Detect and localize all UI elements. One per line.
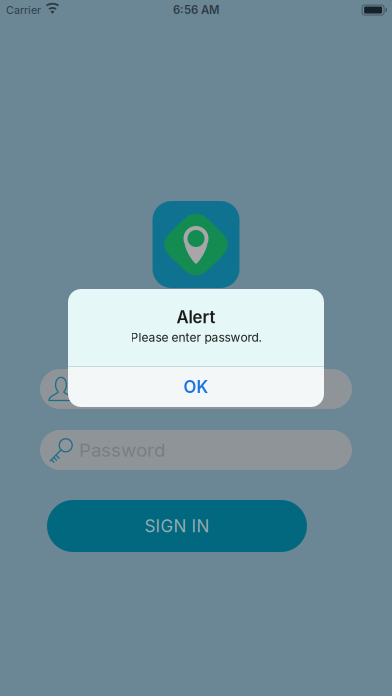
button[interactable]: Password <box>40 430 352 470</box>
button[interactable]: SIGN IN <box>47 500 307 552</box>
staticText: OK <box>183 377 208 397</box>
staticText: Password <box>79 439 165 461</box>
button[interactable]: OK <box>68 367 324 407</box>
staticText: SIGN IN <box>144 516 209 536</box>
staticText: Please enter password. <box>130 330 261 345</box>
staticText: Alert <box>176 307 215 327</box>
button[interactable]: Username <box>40 369 352 409</box>
staticText: Carrier <box>6 3 41 16</box>
staticText: 6:56 AM <box>173 3 219 17</box>
